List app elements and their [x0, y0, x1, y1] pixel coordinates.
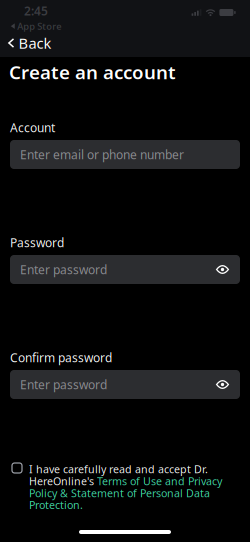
- staticText: I have carefully read and accept Dr. Her…: [29, 462, 222, 512]
- staticText: Create an account: [9, 60, 176, 84]
- staticText: Account: [10, 119, 55, 135]
- staticText: Enter password: [20, 261, 107, 277]
- staticText: 2:45: [24, 3, 48, 19]
- staticText: Enter email or phone number: [20, 146, 184, 162]
- button[interactable]: Enter email or phone number: [10, 140, 240, 169]
- staticText: Enter password: [20, 376, 107, 392]
- button[interactable]: Enter password: [10, 370, 240, 399]
- button[interactable]: I have carefully read and accept Dr. Her…: [12, 462, 240, 512]
- staticText: Back: [18, 33, 51, 53]
- button[interactable]: Back: [0, 31, 61, 55]
- staticText: App Store: [17, 20, 61, 32]
- staticText: Password: [10, 234, 64, 250]
- staticText: Confirm password: [10, 349, 112, 365]
- button[interactable]: Enter password: [10, 255, 240, 284]
